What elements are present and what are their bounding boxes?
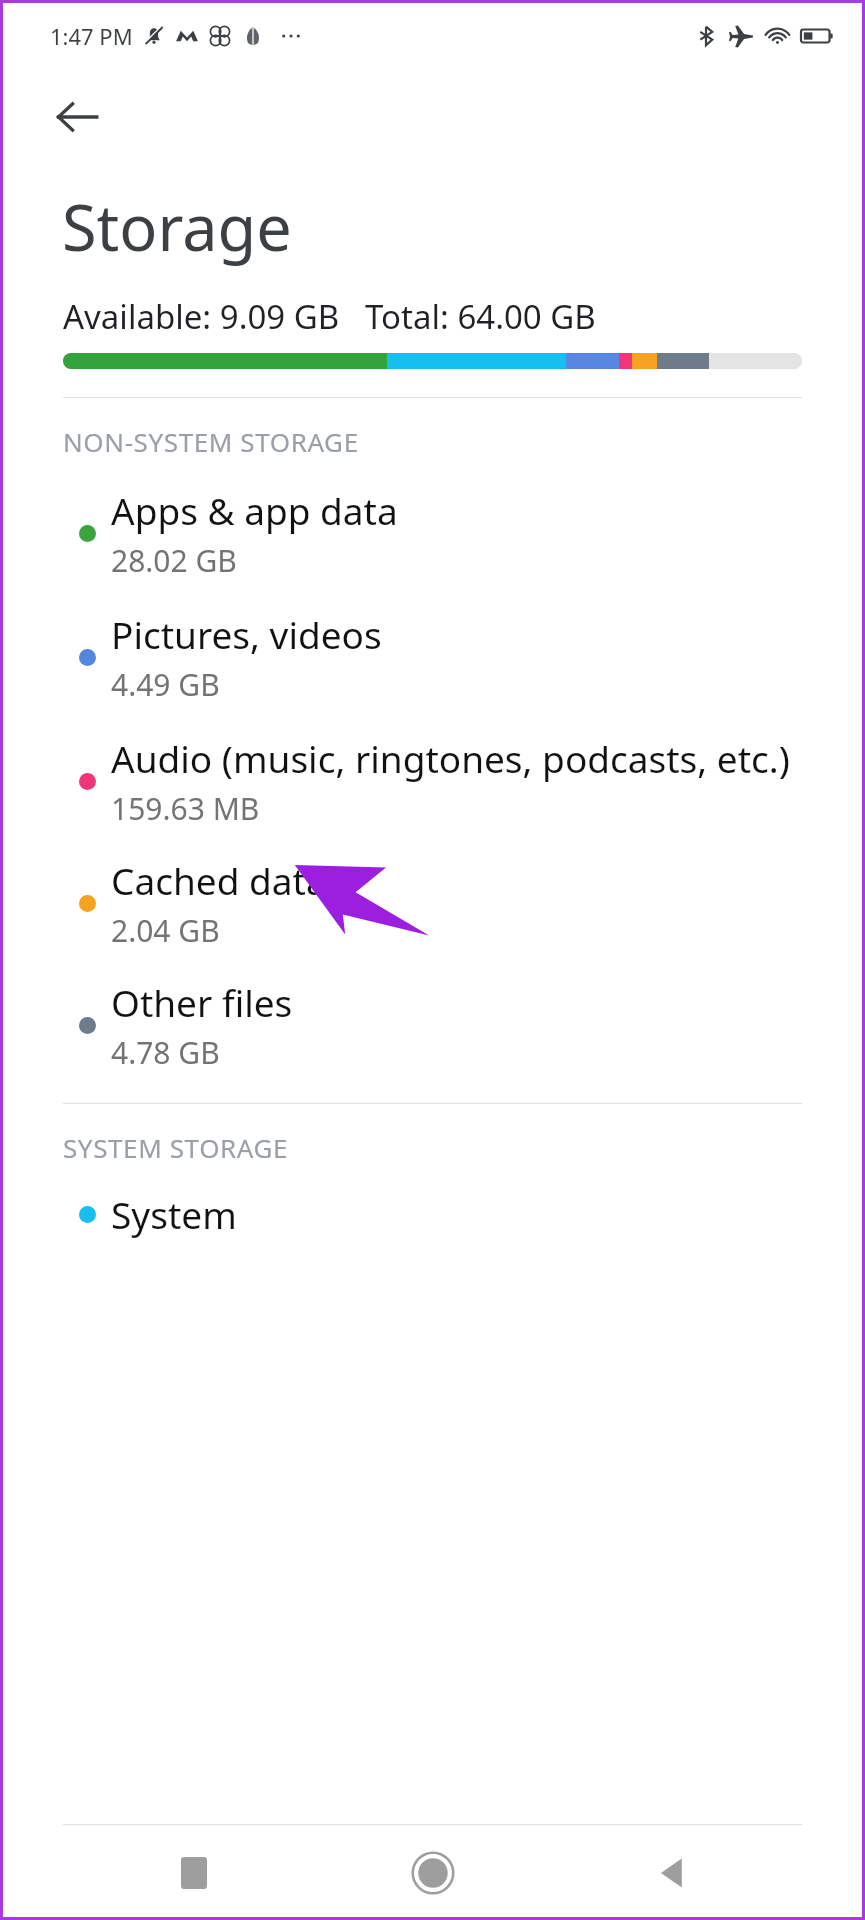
staticText: Storage xyxy=(62,184,292,270)
button[interactable]: Back xyxy=(626,1828,716,1918)
staticText: 1:47 PM xyxy=(50,21,133,51)
staticText: System xyxy=(111,1189,237,1239)
staticText: Pictures, videos xyxy=(111,609,382,659)
staticText: Cached data xyxy=(111,855,327,905)
staticText: 159.63 MB xyxy=(111,788,260,829)
staticText: Audio (music, ringtones, podcasts, etc.) xyxy=(111,733,790,783)
button[interactable]: Home xyxy=(388,1828,478,1918)
staticText: 4.49 GB xyxy=(111,664,220,705)
staticText: Apps & app data xyxy=(111,485,398,535)
button[interactable]: Apps & app data xyxy=(0,485,865,581)
staticText: NON-SYSTEM STORAGE xyxy=(63,424,359,459)
button[interactable]: Audio (music, ringtones, podcasts, etc.) xyxy=(0,733,865,829)
staticText: 4.78 GB xyxy=(111,1032,220,1073)
button[interactable]: Back xyxy=(44,84,110,150)
button[interactable]: System xyxy=(0,1189,865,1239)
staticText: 2.04 GB xyxy=(111,910,220,951)
button[interactable]: Pictures, videos xyxy=(0,609,865,705)
button[interactable]: Cached data xyxy=(0,855,865,951)
button[interactable]: Other files xyxy=(0,977,865,1073)
staticText: Available: 9.09 GB Total: 64.00 GB xyxy=(63,294,596,339)
button[interactable]: Recent apps xyxy=(149,1828,239,1918)
staticText: SYSTEM STORAGE xyxy=(63,1130,289,1165)
staticText: Other files xyxy=(111,977,293,1027)
staticText: 28.02 GB xyxy=(111,540,237,581)
